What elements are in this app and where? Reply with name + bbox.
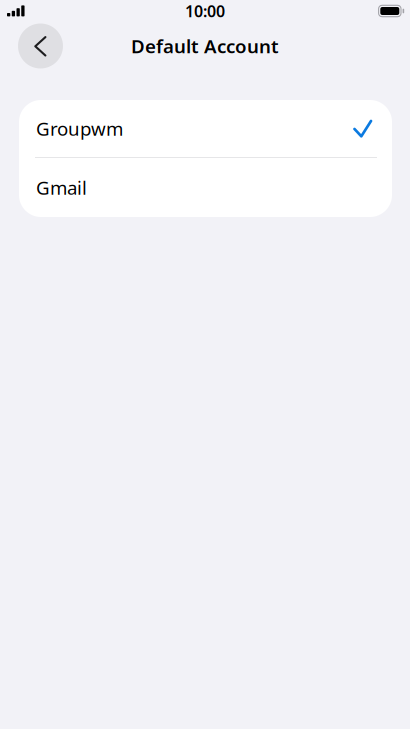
staticText: Gmail xyxy=(36,175,87,200)
staticText: Groupwm xyxy=(36,116,123,141)
staticText: Default Account xyxy=(131,34,279,58)
staticText: 10:00 xyxy=(185,0,225,22)
button[interactable]: Gmail xyxy=(19,158,392,217)
button[interactable]: Groupwm xyxy=(19,100,392,157)
button[interactable]: Back xyxy=(18,23,63,68)
